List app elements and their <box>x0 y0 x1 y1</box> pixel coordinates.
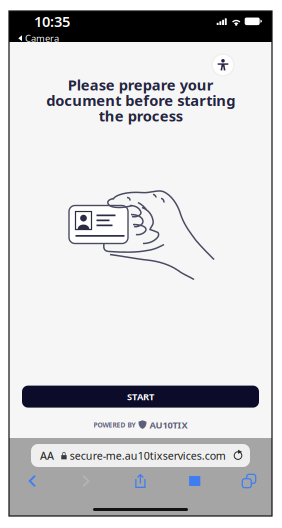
button[interactable]: Bookmarks <box>180 470 210 492</box>
staticText: AU10TIX <box>149 419 187 431</box>
staticText: START <box>127 390 154 403</box>
staticText: 10:35 <box>34 12 70 31</box>
staticText: AA <box>40 448 54 463</box>
button[interactable]: Accessibility options <box>211 53 235 77</box>
button[interactable]: Back <box>17 470 47 492</box>
button[interactable]: Share <box>125 470 155 492</box>
button[interactable]: START <box>22 386 259 408</box>
staticText: Please prepare your document before star… <box>46 75 235 125</box>
staticText: secure-me.au10tixservices.com <box>70 448 226 463</box>
staticText: Camera <box>25 32 59 44</box>
button[interactable]: Tabs <box>234 470 264 492</box>
staticText: POWERED BY <box>93 420 135 429</box>
button[interactable]: AA <box>31 444 250 467</box>
